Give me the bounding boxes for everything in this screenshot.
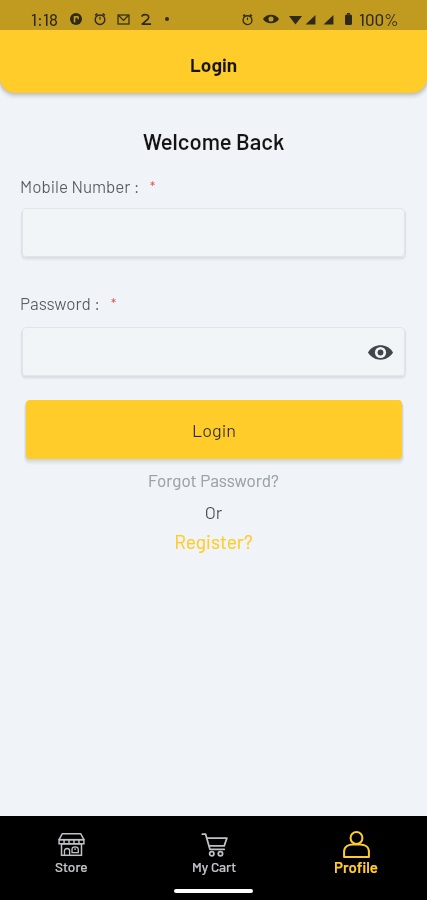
button[interactable]: Forgot Password? <box>0 470 427 490</box>
staticText: Welcome Back <box>0 128 427 154</box>
staticText: Login <box>192 419 236 441</box>
staticText: Password : <box>20 293 111 313</box>
button[interactable]: Login <box>0 30 427 93</box>
staticText: Store <box>55 858 88 874</box>
button[interactable]: Login <box>26 400 402 459</box>
staticText: Profile <box>334 858 378 876</box>
button[interactable]: Profile <box>285 816 427 876</box>
staticText: 100% <box>359 9 399 29</box>
button[interactable]: Register? <box>0 530 427 553</box>
staticText: Login <box>190 53 238 76</box>
staticText: * <box>150 178 156 194</box>
button[interactable] <box>22 208 405 257</box>
staticText: * <box>111 295 117 311</box>
staticText: Or <box>0 501 427 523</box>
staticText: Mobile Number : <box>20 176 150 196</box>
staticText: My Cart <box>192 858 237 874</box>
button[interactable]: Store <box>0 816 143 874</box>
staticText: 1:18 <box>31 9 58 29</box>
button[interactable]: My Cart <box>143 816 285 874</box>
button[interactable]: Show password <box>365 337 395 367</box>
